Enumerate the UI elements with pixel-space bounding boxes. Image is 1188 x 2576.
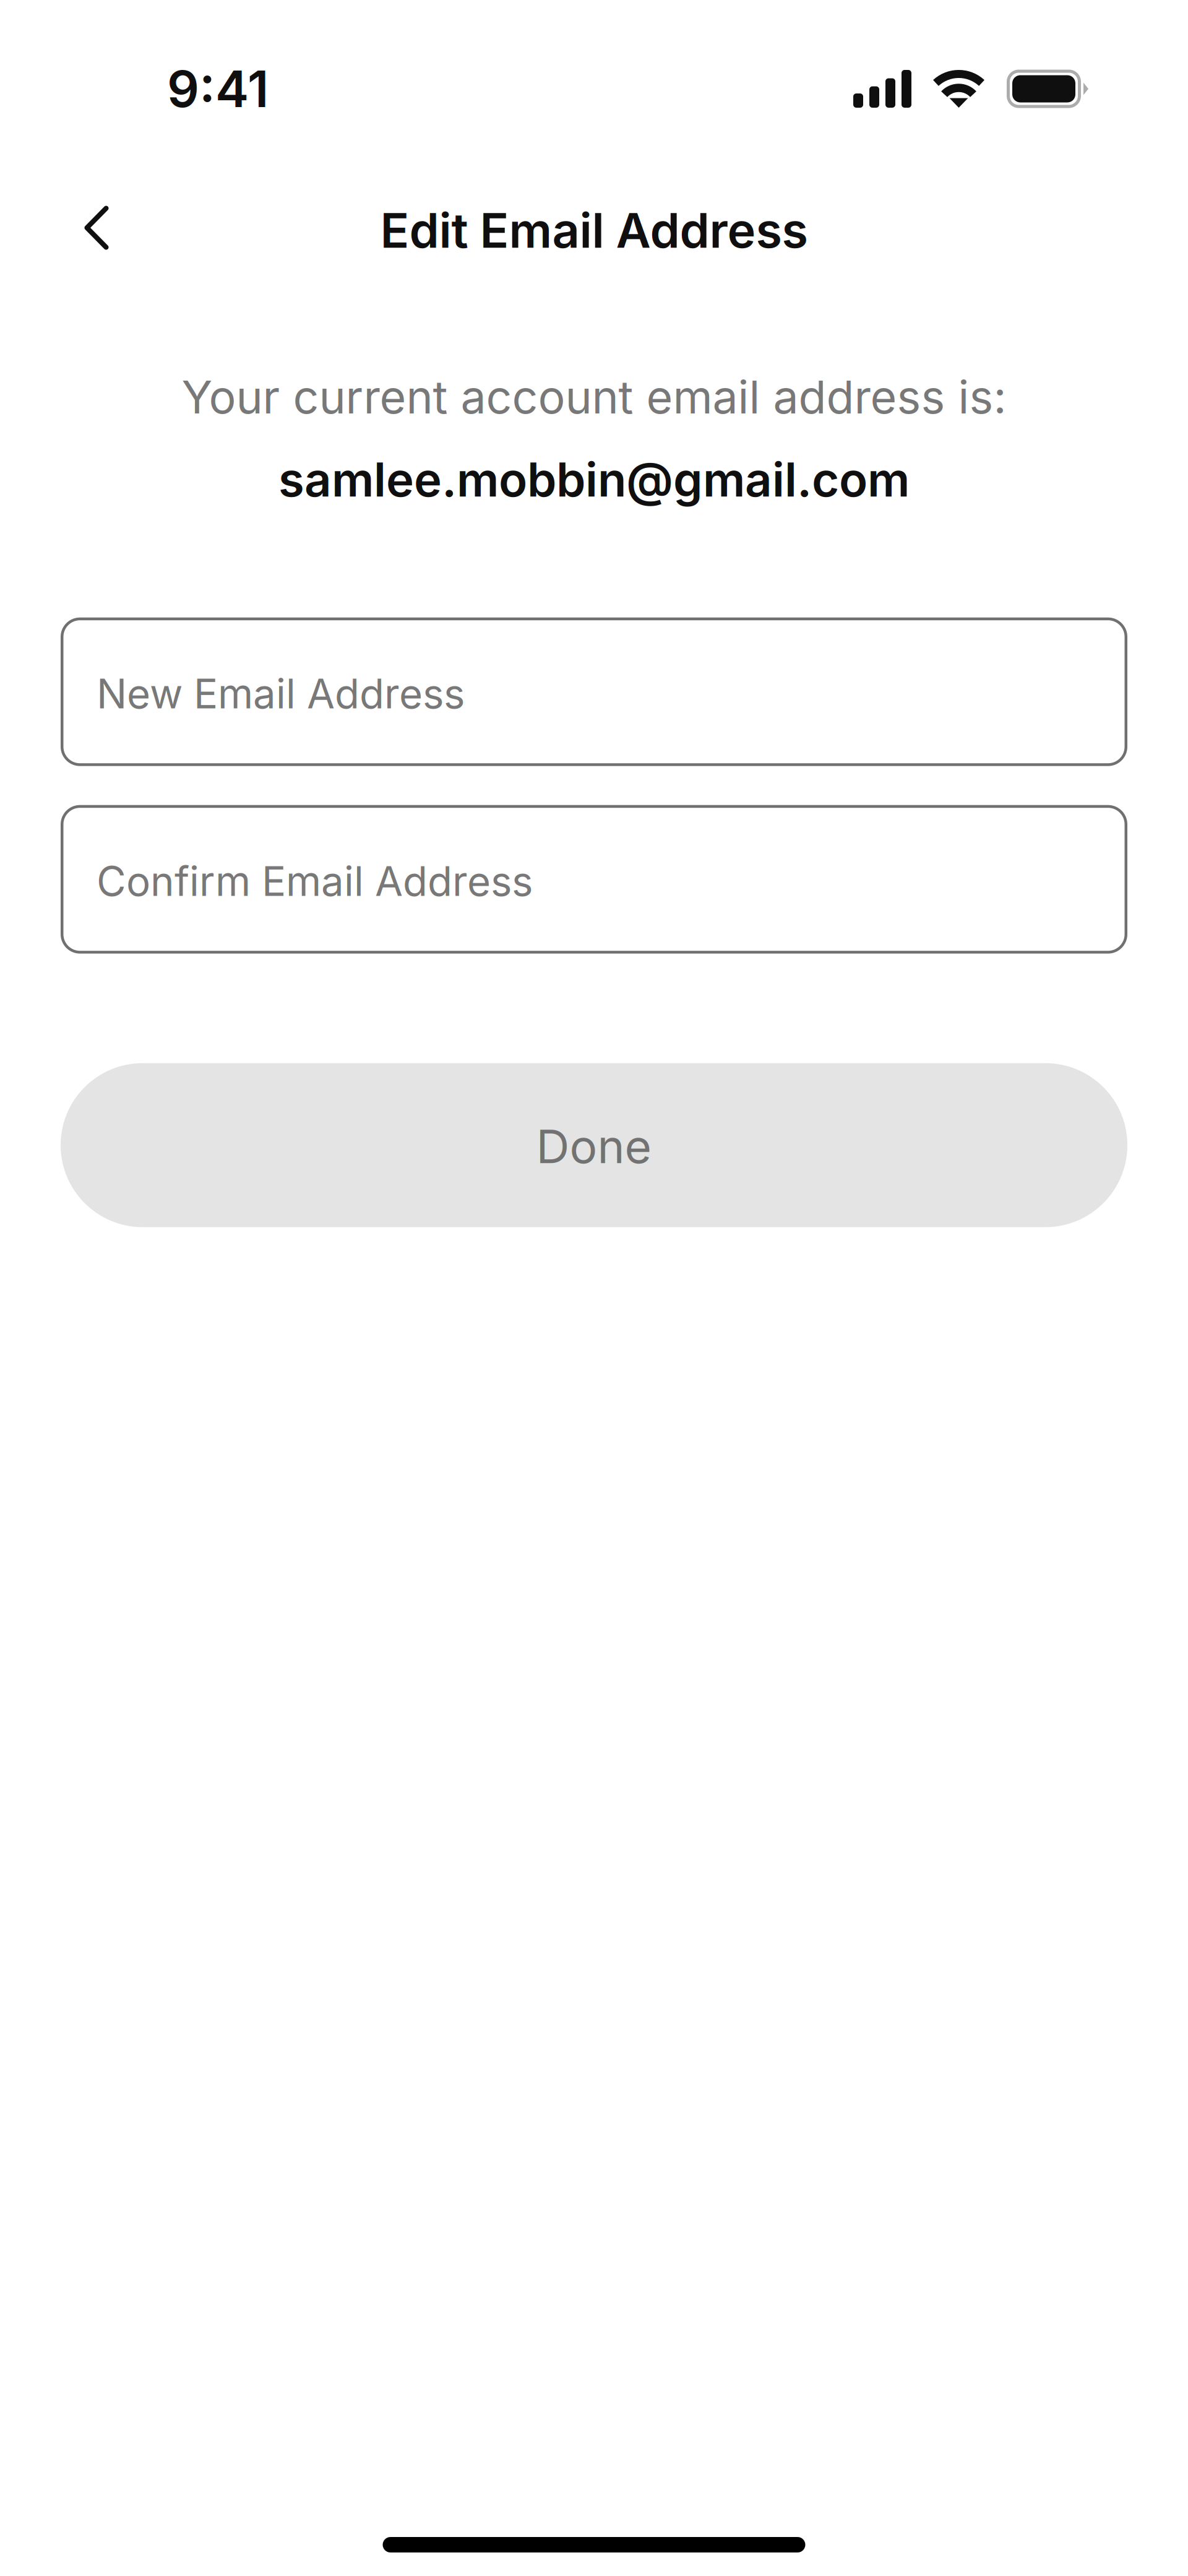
staticText: samlee.mobbin@gmail.com — [278, 451, 910, 508]
staticText: 9:41 — [167, 58, 269, 119]
staticText: Edit Email Address — [380, 201, 808, 259]
button[interactable]: Confirm Email Address — [61, 805, 1127, 954]
button[interactable]: New Email Address — [61, 618, 1127, 766]
staticText: Your current account email address is: — [182, 370, 1006, 424]
button[interactable]: Done — [61, 1063, 1127, 1227]
staticText: Done — [536, 1118, 652, 1174]
staticText: Confirm Email Address — [97, 857, 533, 906]
staticText: New Email Address — [97, 669, 465, 718]
button[interactable]: Back — [59, 205, 132, 255]
